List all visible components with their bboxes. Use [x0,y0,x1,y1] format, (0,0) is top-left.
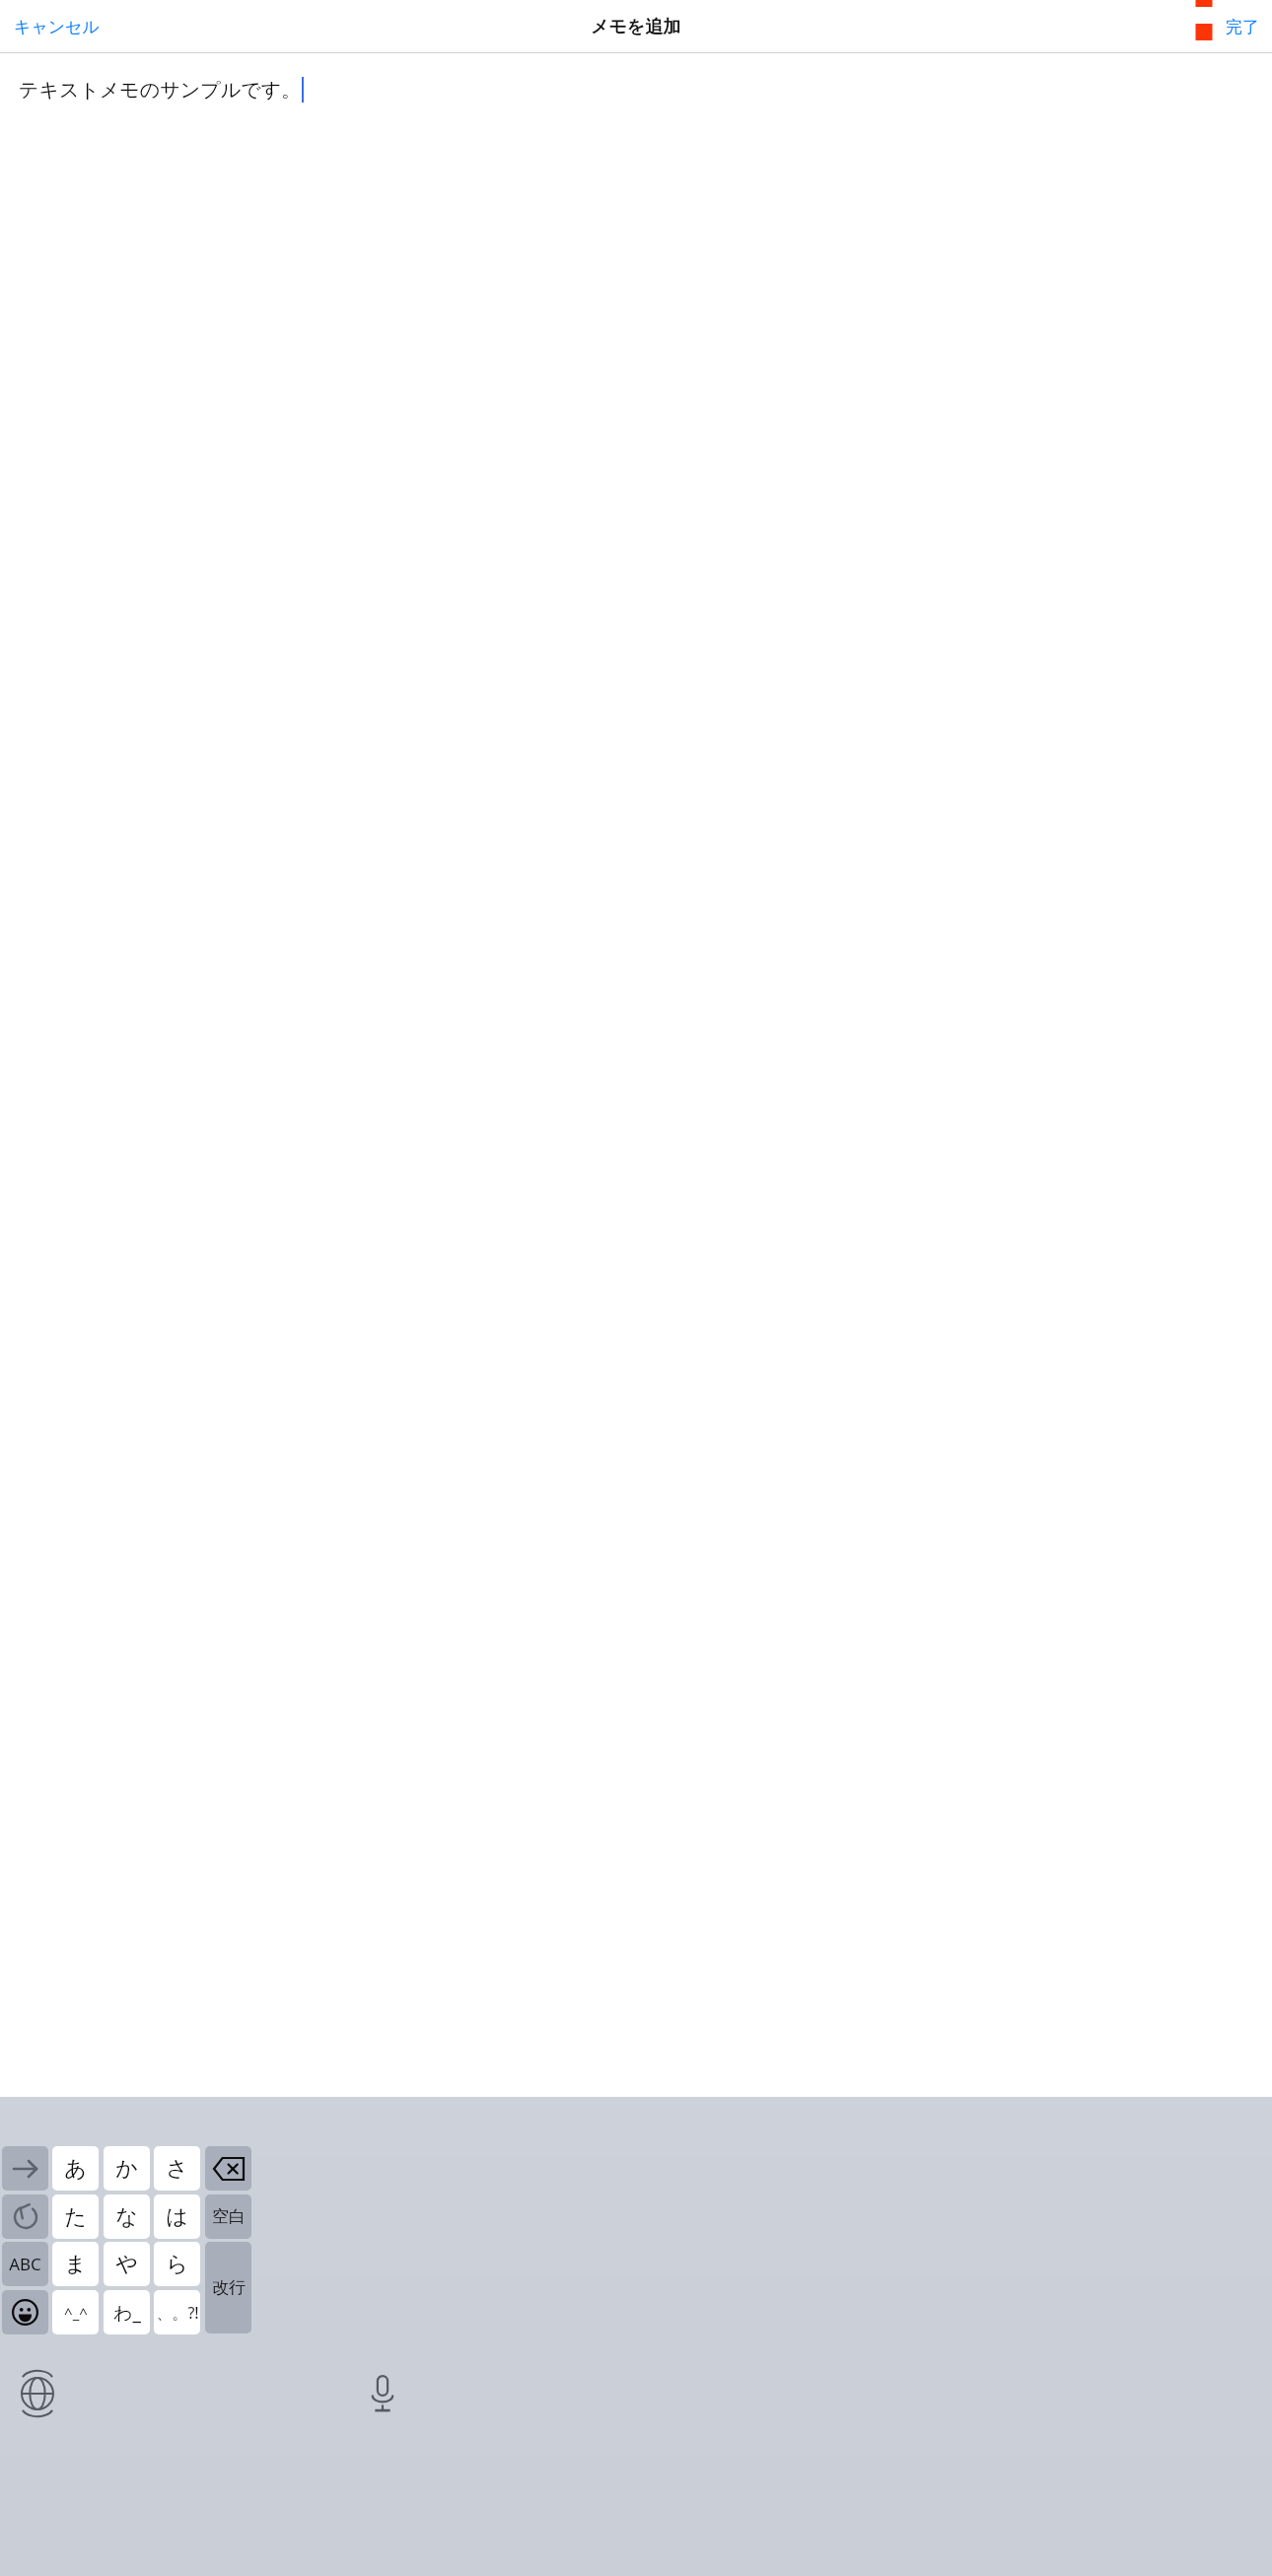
button[interactable]: 、。?! [154,2290,200,2334]
button[interactable]: Delete [205,2146,251,2191]
staticText: か [115,2155,138,2183]
button[interactable]: Undo [2,2194,48,2239]
button[interactable]: た [52,2194,99,2239]
button[interactable]: Dictation [360,2371,405,2416]
button[interactable]: さ [154,2146,200,2191]
button[interactable]: Change keyboard [15,2371,60,2416]
staticText: ABC [9,2253,41,2275]
staticText: あ [64,2155,87,2183]
staticText: な [115,2203,138,2231]
button[interactable]: な [104,2194,150,2239]
staticText: さ [166,2155,188,2183]
staticText: 空白 [212,2206,246,2227]
staticText: 、。?! [156,2302,199,2324]
button[interactable]: ま [52,2242,99,2286]
staticText: テキストメモのサンプルです。 [19,78,302,103]
staticText: ら [166,2251,188,2278]
button[interactable]: 完了 [1218,11,1267,43]
staticText: わ_ [113,2300,141,2326]
button[interactable]: ら [154,2242,200,2286]
button[interactable]: わ_ [104,2290,150,2334]
button[interactable]: 空白 [205,2194,251,2239]
button[interactable]: Next candidate [2,2146,48,2191]
button[interactable]: ^_^ [52,2290,99,2334]
staticText: 改行 [212,2277,246,2298]
staticText: キャンセル [14,17,100,37]
staticText: 完了 [1226,17,1259,37]
button[interactable]: や [104,2242,150,2286]
button[interactable]: か [104,2146,150,2191]
button[interactable]: あ [52,2146,99,2191]
staticText: メモを追加 [591,16,681,38]
staticText: は [166,2203,188,2231]
button[interactable]: Emoji [2,2290,48,2334]
button[interactable]: 改行 [205,2242,251,2333]
staticText: ま [64,2251,87,2278]
staticText: ^_^ [64,2303,88,2323]
staticText: た [64,2203,87,2231]
button[interactable]: キャンセル [10,11,104,43]
staticText: や [115,2251,138,2278]
button[interactable]: ABC [2,2242,48,2286]
button[interactable]: は [154,2194,200,2239]
